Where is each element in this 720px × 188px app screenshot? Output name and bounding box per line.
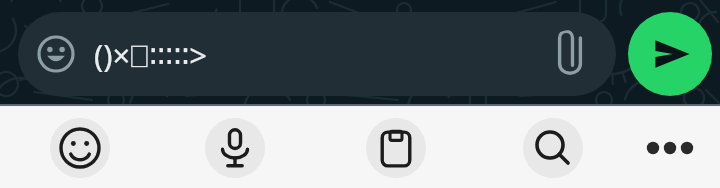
button[interactable]: Search <box>523 118 583 178</box>
button[interactable]: Emoji <box>18 12 616 96</box>
button[interactable]: Voice input <box>205 118 265 178</box>
button[interactable]: Emoji <box>32 30 80 78</box>
button[interactable]: Attach <box>546 30 594 78</box>
staticText: ()×⎕∶∶∶∶∶> <box>94 34 208 76</box>
button[interactable]: More options <box>640 118 700 178</box>
button[interactable]: Emoji keyboard <box>50 118 110 178</box>
button[interactable]: Send <box>628 12 712 96</box>
button[interactable]: Clipboard <box>366 118 426 178</box>
